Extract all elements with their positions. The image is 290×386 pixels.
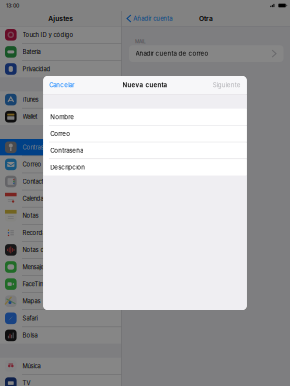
staticText: Batería	[23, 48, 41, 55]
staticText: Recordatorios	[23, 229, 62, 236]
button[interactable]: Añadir cuenta	[122, 12, 172, 25]
staticText: Cancelar	[49, 81, 74, 89]
staticText: iTunes	[23, 96, 39, 103]
staticText: Ajustes	[48, 14, 73, 23]
button[interactable]: Mensajes	[0, 259, 121, 275]
button[interactable]: Añadir cuenta de correo	[122, 45, 290, 62]
staticText: Otra	[199, 14, 213, 23]
button[interactable]: Contraseñas	[0, 139, 121, 156]
staticText: Añadir cuenta de correo	[135, 50, 208, 57]
button[interactable]: Mapas	[0, 293, 121, 309]
staticText: Contactos	[23, 178, 51, 185]
staticText: Contraseña	[50, 147, 83, 154]
button[interactable]: Batería	[0, 44, 121, 60]
staticText: Safari	[23, 315, 38, 322]
staticText: Mapas	[23, 298, 41, 305]
staticText: Notas	[23, 212, 39, 219]
button[interactable]: Siguiente	[213, 78, 247, 92]
button[interactable]: Notas	[0, 207, 121, 224]
button[interactable]: iTunes	[0, 91, 121, 108]
button[interactable]: Cancelar	[43, 78, 74, 92]
staticText: Correo	[50, 130, 70, 137]
staticText: Correo	[23, 161, 42, 168]
staticText: Notas de voz	[23, 246, 59, 253]
button[interactable]: Calendario	[0, 190, 121, 207]
button[interactable]: Recordatorios	[0, 224, 121, 241]
button[interactable]: Música	[0, 358, 121, 374]
staticText: TV	[23, 380, 31, 386]
staticText: Contraseñas	[23, 144, 56, 151]
button[interactable]: Privacidad	[0, 61, 121, 77]
staticText: Siguiente	[213, 81, 241, 89]
staticText: 13:00	[6, 2, 19, 9]
button[interactable]: Touch ID y código	[0, 26, 121, 43]
staticText: FaceTime	[23, 281, 48, 288]
staticText: Mensajes	[23, 263, 47, 271]
button[interactable]: Correo	[0, 156, 121, 173]
staticText: Privacidad	[23, 65, 51, 73]
button[interactable]: Contactos	[0, 173, 121, 190]
staticText: MAIL	[135, 39, 146, 44]
button[interactable]: TV	[0, 375, 121, 386]
staticText: Música	[23, 362, 41, 370]
staticText: Wallet	[23, 113, 38, 120]
staticText: Touch ID y código	[23, 31, 74, 38]
button[interactable]: Bolsa	[0, 327, 121, 344]
button[interactable]: Wallet	[0, 108, 121, 125]
staticText: Calendario	[23, 195, 51, 202]
staticText: Nueva cuenta	[122, 81, 167, 89]
button[interactable]: FaceTime	[0, 276, 121, 292]
button[interactable]: Notas de voz	[0, 242, 121, 258]
staticText: Descripción	[50, 164, 85, 171]
button[interactable]: Safari	[0, 310, 121, 327]
staticText: Bolsa	[23, 332, 38, 339]
staticText: Nombre	[50, 113, 74, 121]
staticText: Añadir cuenta	[133, 15, 172, 22]
